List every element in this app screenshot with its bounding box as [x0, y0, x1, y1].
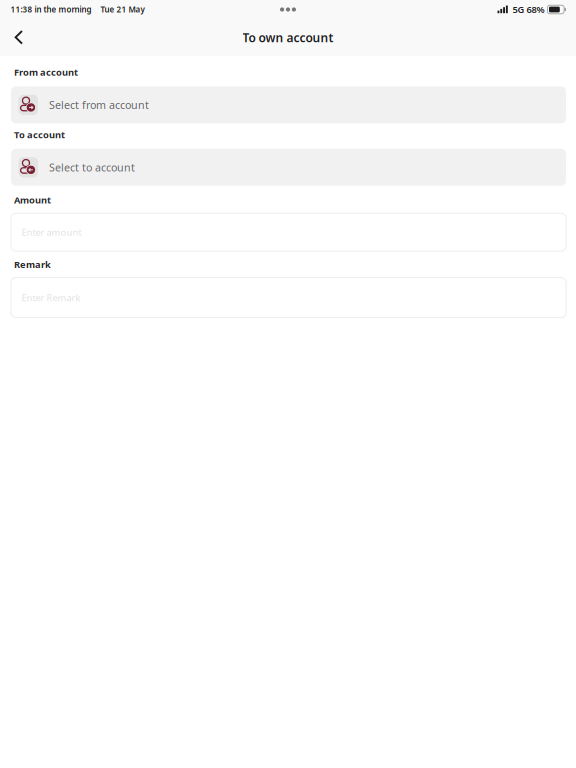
staticText: Amount	[14, 194, 51, 206]
staticText: 5G 68%	[512, 3, 544, 16]
staticText: From account	[14, 66, 78, 78]
staticText: Select from account	[49, 98, 149, 112]
staticText: 11:38 in the morning	[10, 4, 91, 15]
button[interactable]: Select to account	[11, 149, 566, 186]
staticText: Enter Remark	[21, 291, 80, 304]
staticText: To account	[14, 128, 65, 141]
staticText: Select to account	[49, 160, 135, 174]
staticText: Remark	[14, 258, 51, 271]
button[interactable]: Enter Remark	[11, 278, 566, 318]
staticText: Enter amount	[21, 226, 81, 238]
button[interactable]: Select from account	[11, 86, 566, 123]
staticText: Tue 21 May	[100, 4, 144, 15]
staticText: To own account	[242, 29, 333, 45]
button[interactable]: Back	[0, 23, 35, 52]
